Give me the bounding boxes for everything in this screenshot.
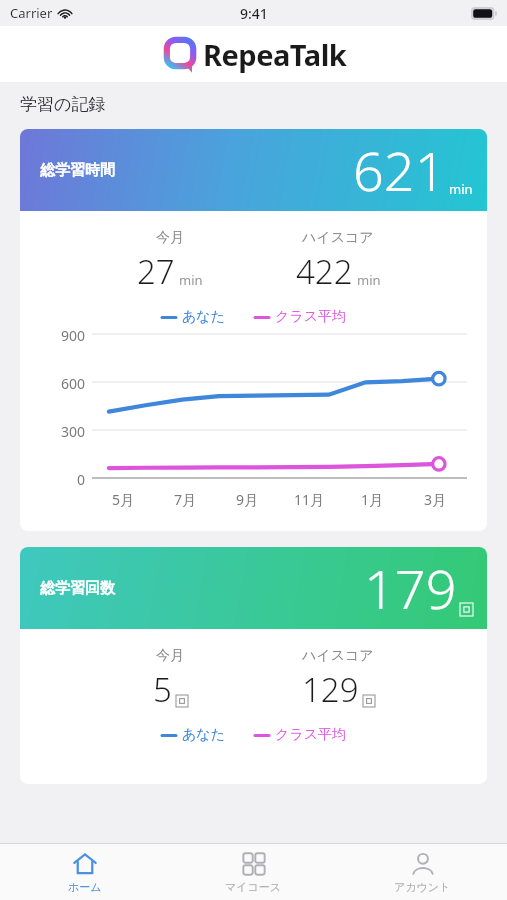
staticText: 総学習回数: [40, 579, 115, 598]
staticText: min: [357, 271, 381, 289]
staticText: 9月: [236, 490, 259, 509]
button[interactable]: ホーム: [0, 844, 169, 900]
staticText: 129: [302, 667, 359, 712]
staticText: ホーム: [68, 880, 102, 894]
staticText: 600: [61, 374, 86, 390]
staticText: 学習の記録: [20, 94, 106, 115]
staticText: 3月: [424, 490, 447, 509]
staticText: 0: [77, 470, 86, 486]
staticText: 300: [61, 422, 86, 438]
staticText: min: [449, 180, 473, 198]
button[interactable]: 総学習回数: [20, 547, 487, 784]
staticText: 今月: [156, 229, 184, 247]
staticText: 900: [61, 326, 86, 342]
staticText: 179: [364, 551, 457, 625]
staticText: 422: [296, 249, 353, 294]
staticText: 今月: [156, 647, 184, 665]
button[interactable]: アカウント: [338, 844, 507, 900]
staticText: あなた: [182, 308, 225, 326]
staticText: 5月: [112, 490, 135, 509]
staticText: 27: [137, 249, 175, 294]
staticText: RepeaTalk: [203, 35, 347, 74]
staticText: あなた: [182, 726, 225, 744]
staticText: クラス平均: [275, 308, 346, 326]
staticText: マイコース: [225, 880, 282, 894]
staticText: クラス平均: [275, 726, 346, 744]
staticText: 総学習時間: [40, 161, 115, 180]
button[interactable]: マイコース: [169, 844, 338, 900]
staticText: 11月: [294, 490, 325, 509]
staticText: 5: [153, 667, 172, 712]
staticText: 621: [353, 133, 446, 207]
button[interactable]: 総学習時間: [20, 129, 487, 531]
staticText: ハイスコア: [302, 229, 374, 247]
staticText: min: [179, 271, 203, 289]
staticText: Carrier: [10, 4, 53, 22]
staticText: アカウント: [394, 880, 451, 894]
staticText: 9:41: [240, 4, 268, 23]
staticText: 7月: [174, 490, 197, 509]
staticText: ハイスコア: [302, 647, 374, 665]
staticText: 1月: [361, 490, 384, 509]
